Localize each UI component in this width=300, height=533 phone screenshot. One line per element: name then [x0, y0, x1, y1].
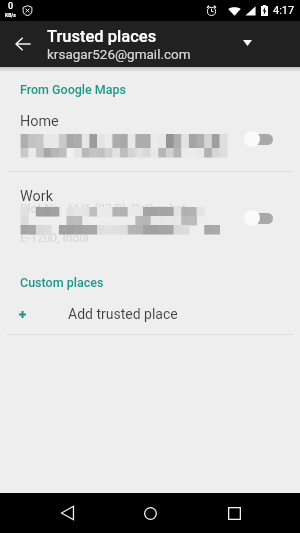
staticText: krsagar526@gmail.com	[47, 46, 191, 62]
button[interactable]: Toggle trusted place	[243, 128, 275, 150]
staticText: KB/s	[5, 12, 16, 18]
staticText: Custom places	[20, 275, 104, 290]
staticText: 0	[8, 1, 14, 12]
button[interactable]: Recent apps	[214, 493, 254, 533]
staticText: 4:17	[273, 4, 295, 17]
staticText: Add trusted place	[68, 306, 178, 322]
staticText: Plot No. 44/1 (27 B), Pathankot	[20, 202, 187, 216]
button[interactable]: Select account	[235, 31, 259, 55]
button[interactable]: Navigate up	[8, 29, 38, 59]
button[interactable]: Back	[47, 493, 87, 533]
button[interactable]: Toggle trusted place	[243, 207, 275, 229]
staticText: From Google Maps	[20, 82, 127, 97]
button[interactable]: Add trusted place	[0, 295, 300, 333]
staticText: Work	[20, 188, 53, 205]
staticText: Home	[20, 113, 59, 130]
staticText: Trusted places	[47, 27, 157, 46]
staticText: E-1200, India	[20, 231, 89, 245]
button[interactable]: Home	[130, 493, 170, 533]
